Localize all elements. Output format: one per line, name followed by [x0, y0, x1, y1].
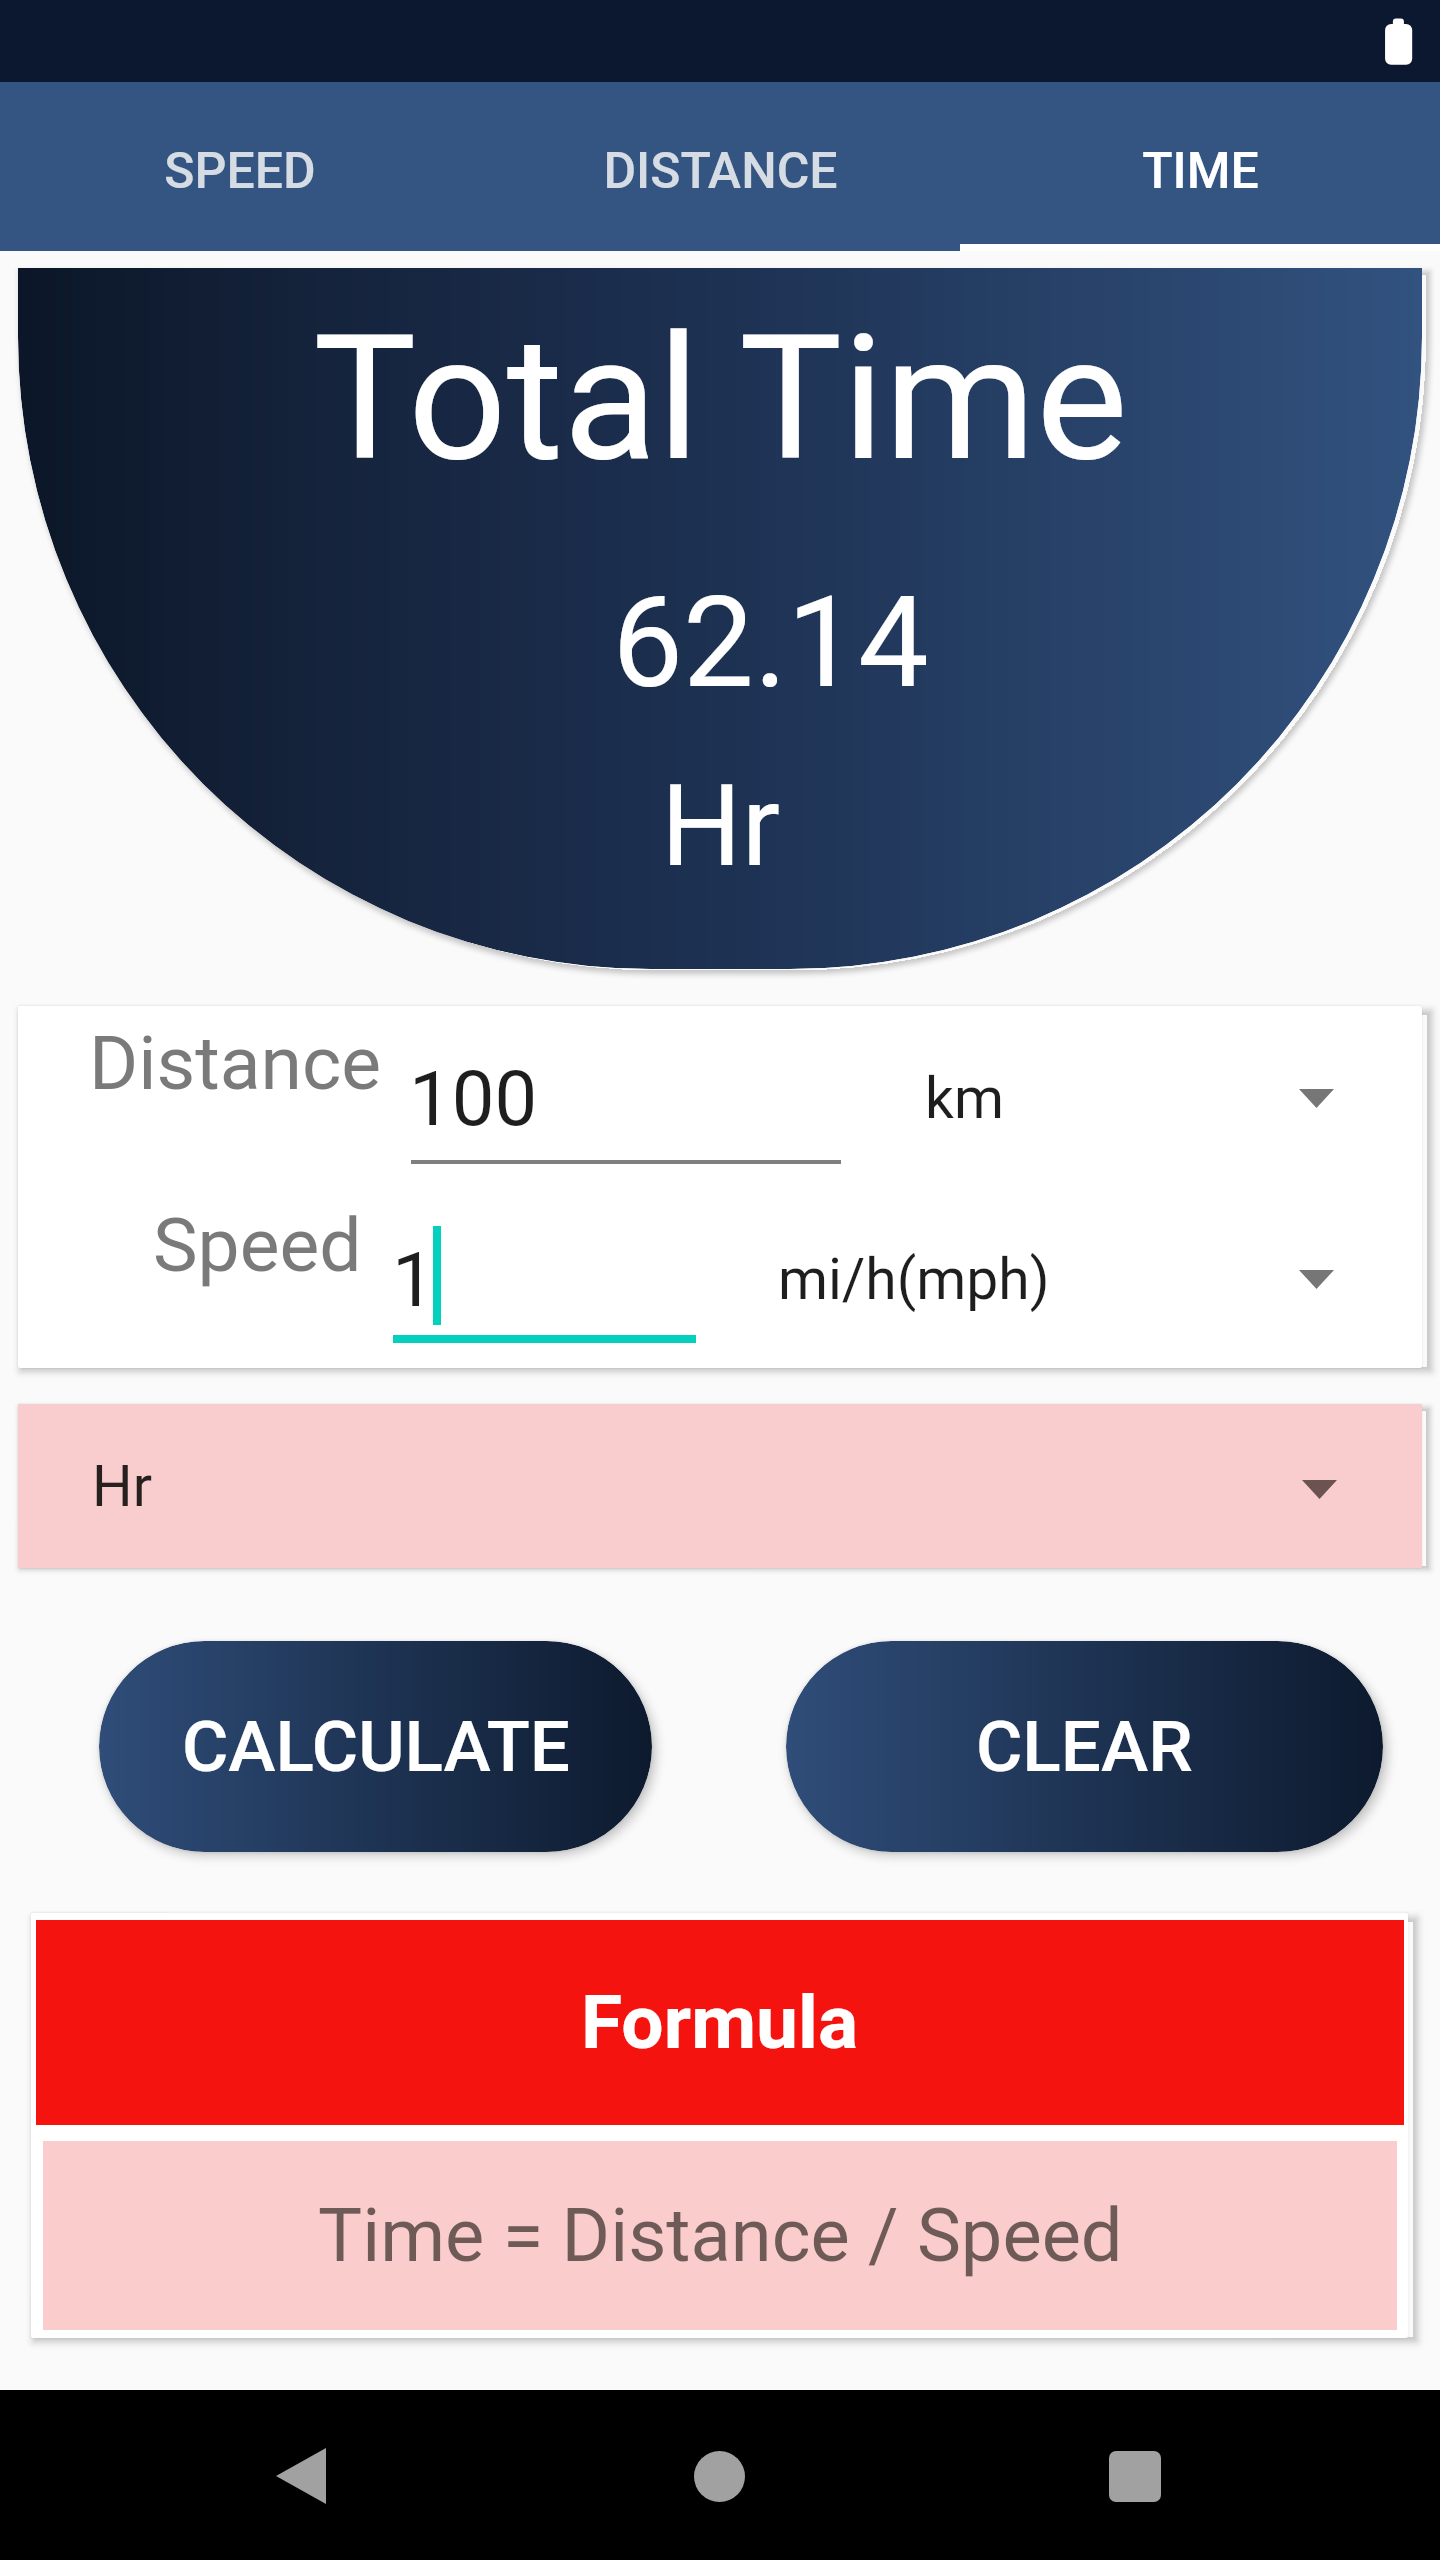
button[interactable]: SPEED	[0, 82, 480, 251]
staticText: Hr	[92, 1453, 152, 1520]
staticText: 1	[392, 1235, 435, 1324]
staticText: CALCULATE	[182, 1705, 570, 1788]
button[interactable]: Back	[256, 2431, 346, 2521]
staticText: SPEED	[164, 142, 316, 201]
button[interactable]: Home	[674, 2431, 764, 2521]
staticText: Formula	[581, 1978, 859, 2066]
button[interactable]: Select unit	[1279, 1242, 1354, 1317]
staticText: Hr	[661, 760, 780, 892]
button[interactable]: CALCULATE	[99, 1641, 652, 1852]
staticText: Distance	[89, 1019, 381, 1107]
button[interactable]: DISTANCE	[480, 82, 960, 251]
button[interactable]: Formula	[36, 1920, 1404, 2125]
button[interactable]: Speed input field	[388, 1201, 699, 1351]
other: Battery	[1380, 15, 1426, 75]
button[interactable]: CLEAR	[786, 1641, 1383, 1852]
staticText: TIME	[1142, 142, 1259, 201]
staticText: mi/h(mph)	[778, 1246, 1050, 1313]
staticText: Time = Distance / Speed	[318, 2192, 1123, 2279]
staticText: 62.14	[612, 569, 929, 717]
button[interactable]: TIME	[960, 82, 1440, 251]
button[interactable]: Hr	[18, 1404, 1422, 1568]
button[interactable]: Distance input field	[405, 1020, 843, 1170]
staticText: Speed	[153, 1201, 362, 1289]
button[interactable]: Select unit	[1279, 1061, 1354, 1136]
staticText: Total Time	[313, 298, 1128, 501]
staticText: DISTANCE	[603, 142, 838, 201]
button[interactable]: Recents	[1090, 2431, 1180, 2521]
staticText: 100	[409, 1054, 538, 1143]
staticText: km	[925, 1065, 1004, 1132]
staticText: CLEAR	[976, 1705, 1193, 1788]
